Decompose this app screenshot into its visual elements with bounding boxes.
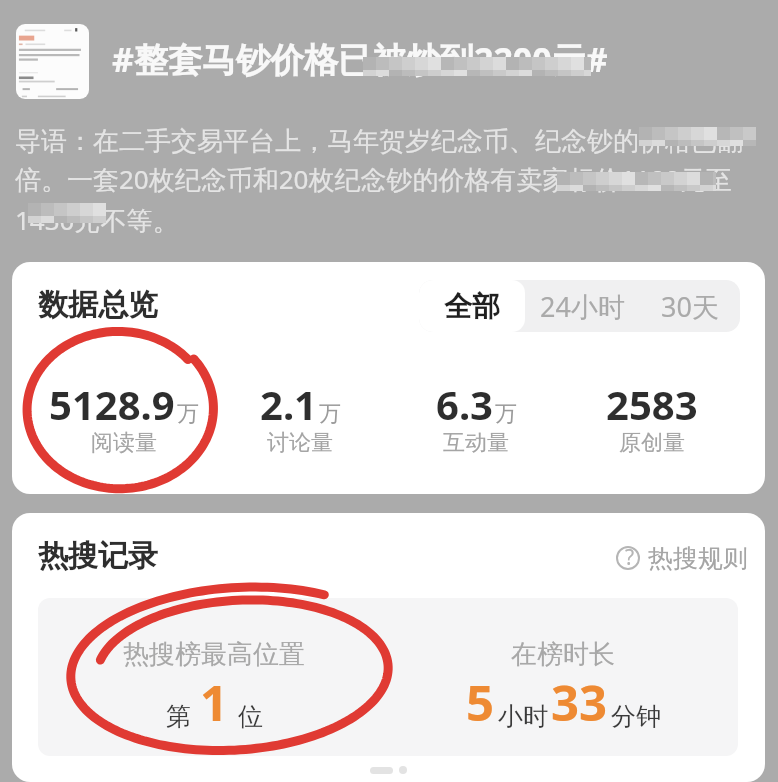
staticText: 倍。一套20枚纪念币和20枚纪念钞的价格有卖家标价1100元至	[15, 161, 732, 197]
staticText: 导语：在二手交易平台上，马年贺岁纪念币、纪念钞的价格已翻	[15, 125, 743, 158]
staticText: 数据总览	[38, 286, 158, 324]
staticText: 第	[166, 701, 191, 732]
staticText: 位	[238, 701, 263, 732]
button[interactable]: Preview screenshot	[16, 24, 89, 99]
staticText: 6.3	[436, 377, 493, 431]
staticText: 阅读量	[91, 429, 157, 457]
staticText: 热搜规则	[648, 543, 748, 574]
staticText: 小时	[498, 701, 548, 732]
staticText: 24小时	[540, 288, 625, 325]
staticText: 1430元不等。	[15, 202, 179, 238]
staticText: 万	[177, 400, 199, 428]
staticText: 5	[466, 669, 495, 736]
staticText: 1	[200, 669, 229, 736]
button[interactable]: 24小时	[525, 280, 639, 332]
staticText: ?	[625, 543, 635, 572]
staticText: 2.1	[260, 377, 317, 431]
staticText: 33	[551, 669, 608, 736]
button[interactable]: 全部	[419, 280, 525, 332]
staticText: 万	[495, 400, 517, 428]
staticText: 30天	[661, 288, 719, 325]
staticText: 在榜时长	[511, 638, 615, 671]
staticText: 分钟	[611, 701, 661, 732]
button[interactable]: 30天	[639, 280, 740, 332]
staticText: 热搜榜最高位置	[123, 638, 305, 671]
button[interactable]: 热搜规则	[616, 541, 748, 575]
staticText: 全部	[444, 289, 500, 324]
staticText: 万	[319, 400, 341, 428]
staticText: #整套马钞价格已被炒到2200元#	[112, 36, 608, 82]
staticText: 原创量	[619, 429, 685, 457]
staticText: 5128.9	[49, 377, 175, 431]
staticText: 2583	[606, 377, 698, 431]
staticText: 互动量	[443, 429, 509, 457]
staticText: 讨论量	[267, 429, 333, 457]
staticText: 热搜记录	[38, 537, 158, 575]
